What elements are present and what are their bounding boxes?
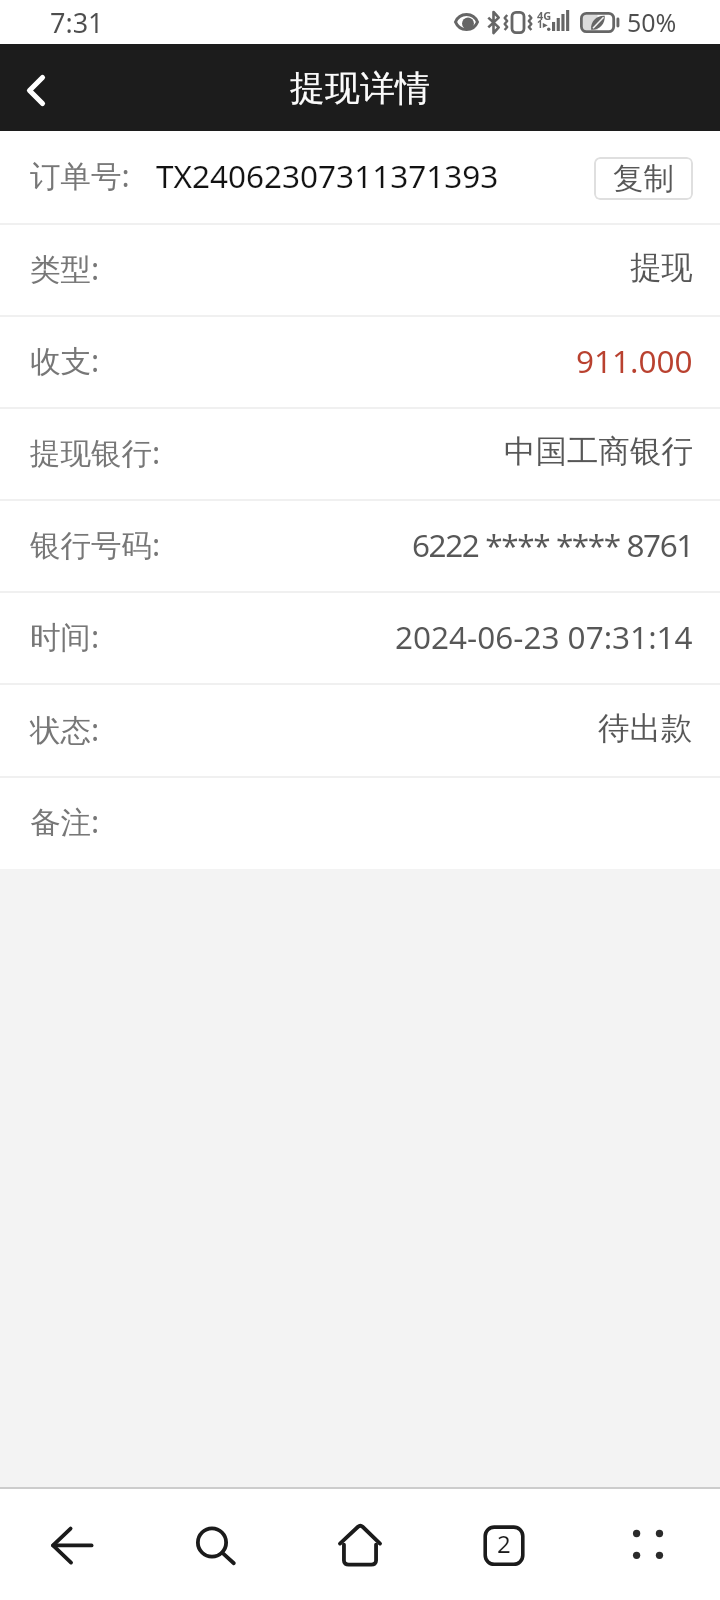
staticText: 中国工商银行 — [504, 432, 693, 472]
button[interactable]: 标签页 2 — [432, 1489, 576, 1600]
staticText: 50% — [627, 5, 677, 39]
staticText: 时间: — [30, 615, 100, 657]
staticText: 类型: — [30, 247, 100, 289]
staticText: 订单号: — [30, 154, 130, 196]
button[interactable]: 复制订单号 — [594, 157, 693, 200]
staticText: 提现银行: — [30, 431, 161, 473]
staticText: 1▸ — [537, 17, 548, 31]
staticText: 7:31 — [50, 4, 104, 41]
staticText: 提现 — [630, 248, 693, 288]
staticText: 2024-06-23 07:31:14 — [395, 615, 693, 658]
staticText: 6222 **** **** 8761 — [412, 523, 693, 566]
staticText: 911.000 — [576, 339, 693, 382]
staticText: 收支: — [30, 339, 100, 381]
button[interactable]: 返回 — [0, 44, 72, 131]
staticText: 待出款 — [598, 709, 693, 749]
button[interactable]: 后退 — [0, 1489, 144, 1600]
staticText: 复制 — [613, 160, 674, 198]
staticText: 备注: — [30, 800, 100, 842]
staticText: 提现详情 — [290, 66, 430, 110]
staticText: 4G — [537, 8, 552, 23]
staticText: 2 — [497, 1527, 511, 1560]
staticText: 银行号码: — [30, 523, 161, 565]
button[interactable]: 搜索 — [144, 1489, 288, 1600]
staticText: TX24062307311371393 — [156, 154, 499, 197]
button[interactable]: 更多 — [576, 1489, 720, 1600]
button[interactable]: 主页 — [288, 1489, 432, 1600]
staticText: 状态: — [30, 708, 100, 750]
